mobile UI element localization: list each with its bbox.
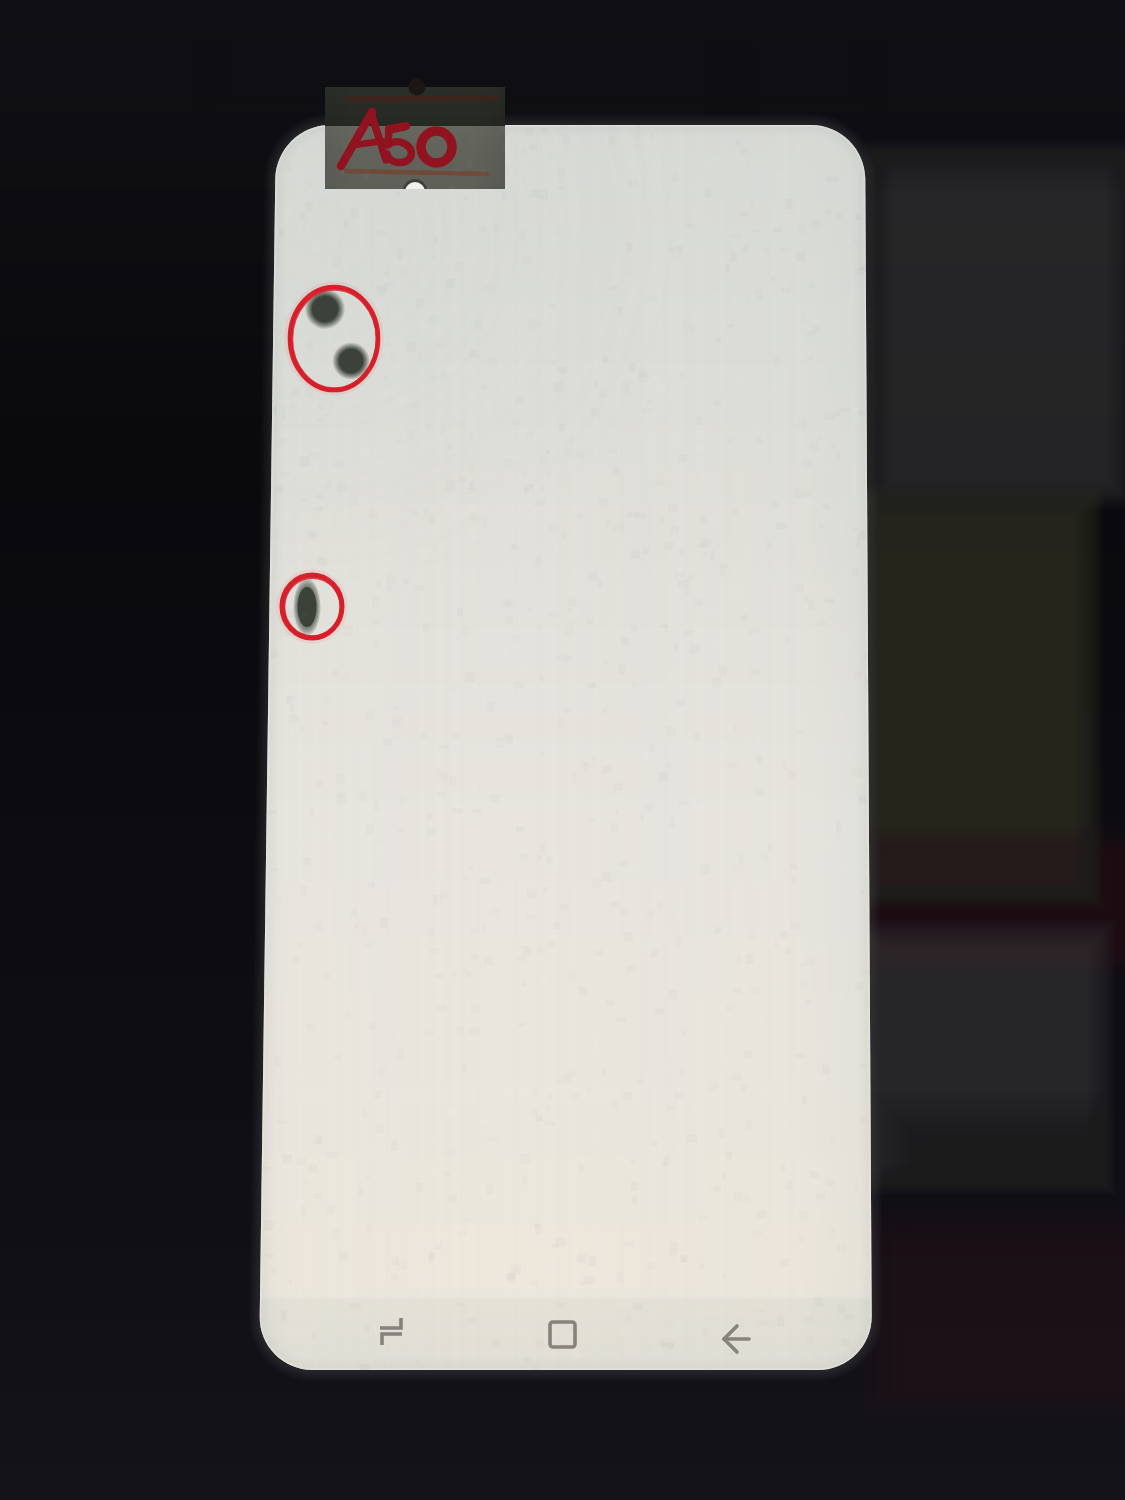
button[interactable]: Back	[684, 1301, 788, 1377]
button[interactable]: Recents	[338, 1293, 442, 1369]
button[interactable]: Home	[510, 1297, 614, 1373]
